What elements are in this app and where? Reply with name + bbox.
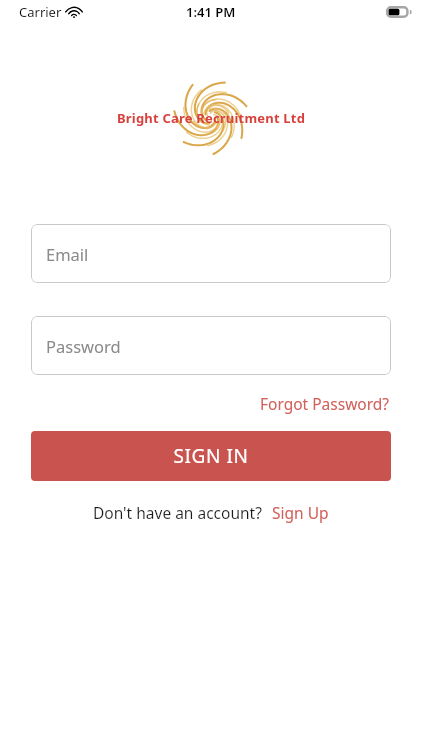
staticText: 1:41 PM <box>186 3 236 21</box>
staticText: Carrier <box>19 3 62 21</box>
button[interactable]: SIGN IN <box>31 431 391 481</box>
button[interactable]: Email <box>31 224 391 283</box>
staticText: Don't have an account? <box>93 502 262 523</box>
staticText: Forgot Password? <box>260 393 390 414</box>
staticText: SIGN IN <box>173 443 249 469</box>
button[interactable]: Password <box>31 316 391 375</box>
staticText: Sign Up <box>272 502 329 523</box>
button[interactable]: Forgot Password? <box>259 391 391 416</box>
staticText: Email <box>46 243 89 265</box>
button[interactable]: Sign Up <box>271 500 330 525</box>
staticText: Bright Care Recruitment Ltd <box>117 109 306 127</box>
staticText: Password <box>46 335 121 357</box>
